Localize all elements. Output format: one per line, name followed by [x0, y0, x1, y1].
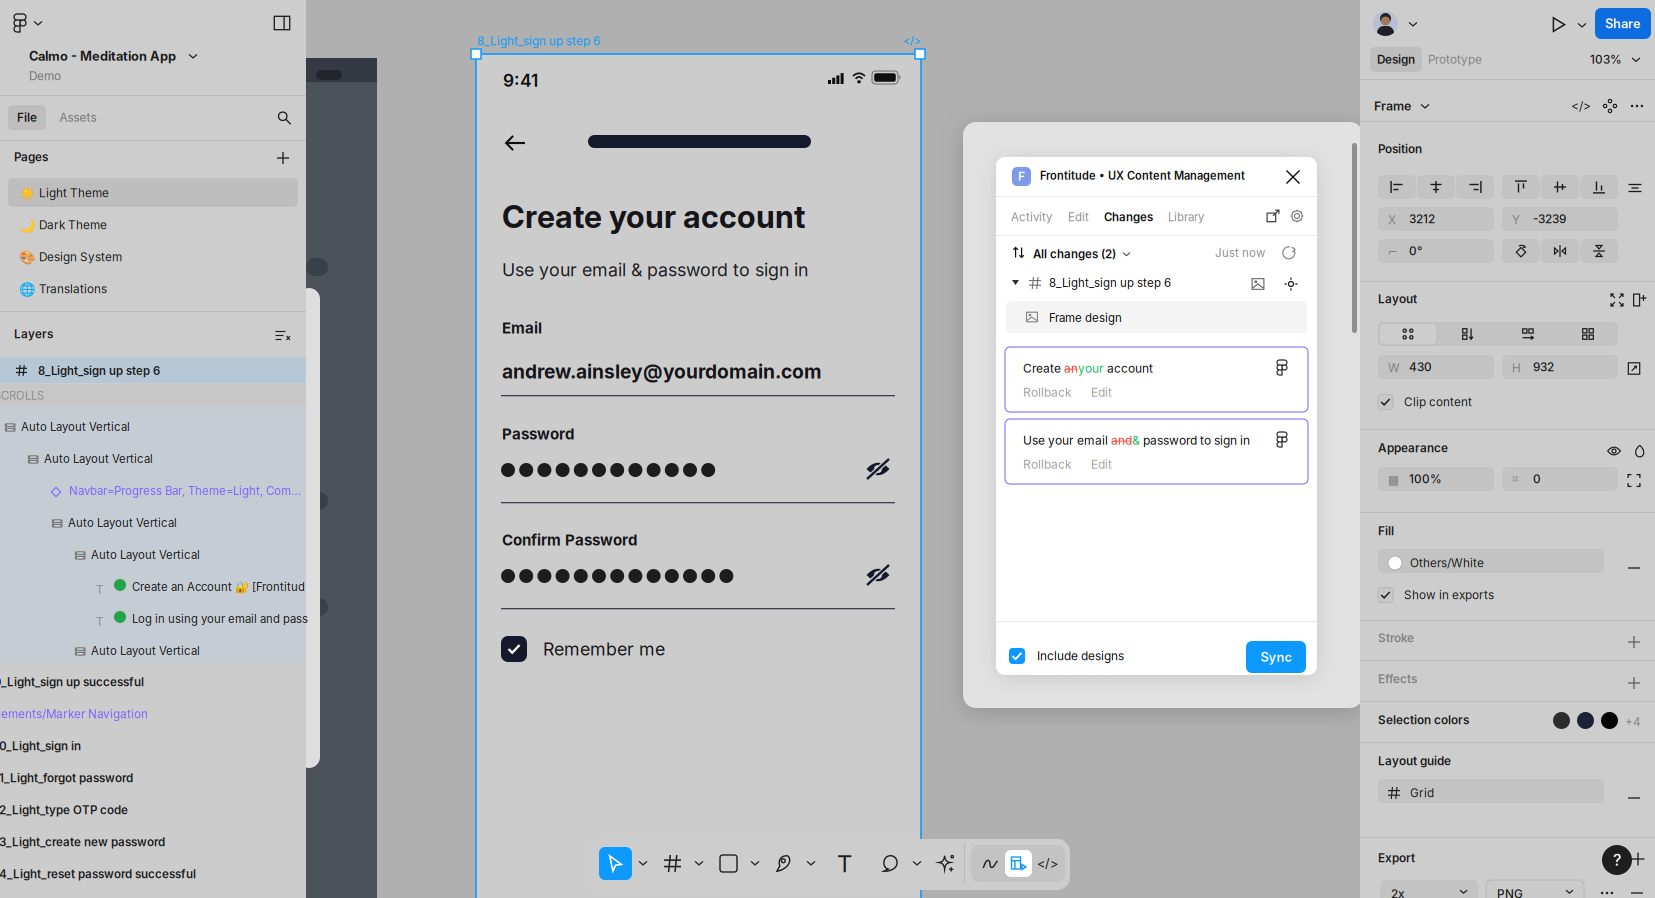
- button[interactable]: PNG: [1486, 880, 1584, 898]
- button[interactable]: Edit: [1068, 208, 1089, 226]
- button[interactable]: Activity: [1011, 208, 1052, 226]
- button[interactable]: Sync: [1246, 641, 1306, 673]
- button[interactable]: File: [8, 105, 46, 130]
- button[interactable]: Share: [1595, 8, 1651, 39]
- button[interactable]: Align top: [1502, 175, 1540, 199]
- button[interactable]: Components: [1598, 94, 1622, 118]
- button[interactable]: Zoom to frame: [1281, 274, 1301, 294]
- button[interactable]: Edit: [1091, 385, 1112, 399]
- button[interactable]: Comment options: [910, 853, 924, 873]
- button[interactable]: Move tool: [599, 847, 632, 880]
- button[interactable]: Rollback: [1023, 457, 1072, 471]
- button[interactable]: Log in using your email and pass: [132, 612, 308, 626]
- button[interactable]: Align left: [1378, 175, 1416, 199]
- button[interactable]: Frame tool options: [692, 853, 706, 873]
- button[interactable]: Distribute: [1624, 175, 1646, 201]
- button[interactable]: Account menu: [1407, 18, 1419, 30]
- button[interactable]: Remove layout guide: [1623, 787, 1645, 809]
- button[interactable]: Auto Layout Vertical: [91, 548, 200, 562]
- button[interactable]: 🎨: [8, 242, 298, 271]
- button[interactable]: Present options: [1576, 19, 1588, 31]
- button[interactable]: Frame design: [1006, 301, 1307, 333]
- button[interactable]: Show confirm password: [866, 564, 890, 586]
- button[interactable]: Show password: [866, 458, 890, 480]
- button[interactable]: Auto Layout Vertical: [68, 516, 177, 530]
- button[interactable]: ☀️: [8, 178, 298, 207]
- button[interactable]: Help: [1602, 845, 1632, 875]
- button[interactable]: Freeform layout: [1379, 323, 1437, 345]
- button[interactable]: Rotate: [1502, 239, 1540, 263]
- button[interactable]: Individual corners: [1622, 467, 1646, 494]
- button[interactable]: Visibility: [1603, 440, 1625, 462]
- button[interactable]: Library: [1168, 208, 1204, 226]
- button[interactable]: Edit: [1091, 457, 1112, 471]
- button[interactable]: Back: [496, 126, 536, 160]
- button[interactable]: Rollback: [1023, 385, 1072, 399]
- button[interactable]: Figma main menu: [14, 12, 48, 34]
- button[interactable]: Navbar=Progress Bar, Theme=Light, Compon: [69, 484, 307, 498]
- button[interactable]: Add export setting: [1628, 849, 1648, 869]
- button[interactable]: Present: [1548, 14, 1570, 36]
- button[interactable]: Flip horizontal: [1541, 239, 1579, 263]
- button[interactable]: Resize to fit: [1607, 290, 1627, 310]
- button[interactable]: Flip vertical: [1580, 239, 1618, 263]
- button[interactable]: Toggle layers panel: [270, 12, 294, 34]
- button[interactable]: Horizontal layout: [1498, 322, 1558, 346]
- button[interactable]: Pen tool: [769, 848, 800, 879]
- button[interactable]: Align horizontal center: [1417, 175, 1455, 199]
- button[interactable]: Grid layout: [1558, 322, 1618, 346]
- button[interactable]: Auto Layout Vertical: [44, 452, 153, 466]
- button[interactable]: Calmo - Meditation App: [29, 48, 197, 64]
- button[interactable]: Auto Layout Vertical: [91, 644, 200, 658]
- button[interactable]: Add auto layout: [1630, 290, 1650, 310]
- button[interactable]: Annotate: [977, 850, 1004, 877]
- button[interactable]: Others/White: [1378, 549, 1604, 573]
- button[interactable]: Dev mode: [1005, 850, 1032, 877]
- button[interactable]: Align right: [1456, 175, 1494, 199]
- button[interactable]: Text tool: [829, 847, 860, 880]
- button[interactable]: More options: [1625, 94, 1649, 118]
- button[interactable]: Add effect: [1623, 672, 1645, 694]
- button[interactable]: Open in new window: [1263, 206, 1283, 226]
- button[interactable]: Remember me: [501, 634, 665, 664]
- button[interactable]: Actions: [931, 848, 962, 879]
- button[interactable]: 8_Light_sign up step 6: [0, 357, 306, 383]
- button[interactable]: Prototype: [1426, 47, 1484, 72]
- button[interactable]: Shape tool options: [748, 853, 762, 873]
- button[interactable]: Shape tool: [713, 848, 744, 879]
- button[interactable]: Design: [1370, 47, 1422, 72]
- button[interactable]: Export options: [1596, 884, 1618, 898]
- button[interactable]: Resizing options: [1622, 355, 1646, 382]
- button[interactable]: Align bottom: [1580, 175, 1618, 199]
- button[interactable]: Close plugin: [1285, 169, 1301, 185]
- button[interactable]: Assets: [52, 105, 104, 130]
- button[interactable]: All changes (2): [1033, 246, 1130, 262]
- button[interactable]: Create an Account 🔐 [Frontitud: [132, 580, 308, 594]
- button[interactable]: Vertical layout: [1438, 322, 1498, 346]
- button[interactable]: Blend mode: [1629, 440, 1651, 462]
- button[interactable]: 🌙: [8, 210, 298, 239]
- button[interactable]: 8_Light_sign up step 6: [1049, 276, 1171, 290]
- button[interactable]: Frame: [1374, 97, 1429, 115]
- button[interactable]: Refresh changes: [1279, 243, 1299, 263]
- button[interactable]: Account: [1373, 11, 1398, 36]
- button[interactable]: 🌐: [8, 274, 298, 303]
- button[interactable]: Auto Layout Vertical: [21, 420, 130, 434]
- button[interactable]: Frame tool: [657, 848, 688, 879]
- button[interactable]: Code: [1569, 94, 1593, 118]
- button[interactable]: 103%: [1590, 47, 1640, 72]
- button[interactable]: Pen tool options: [804, 853, 818, 873]
- button[interactable]: Move tool options: [636, 853, 650, 873]
- button[interactable]: Code view: [1034, 850, 1061, 877]
- button[interactable]: Add stroke: [1623, 631, 1645, 653]
- button[interactable]: Grid: [1378, 779, 1604, 803]
- button[interactable]: Show in exports: [1378, 584, 1494, 606]
- button[interactable]: Remove fill: [1623, 557, 1645, 579]
- button[interactable]: 2x: [1380, 880, 1478, 898]
- button[interactable]: Remove export setting: [1628, 884, 1646, 898]
- button[interactable]: Plugin settings: [1287, 206, 1307, 226]
- button[interactable]: Include designs: [1009, 646, 1124, 666]
- button[interactable]: Add page: [272, 147, 294, 169]
- button[interactable]: Layer display options: [272, 325, 294, 347]
- button[interactable]: Comment tool: [875, 848, 906, 879]
